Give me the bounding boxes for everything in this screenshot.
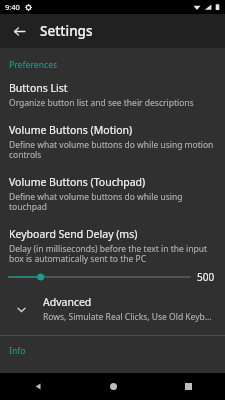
button[interactable]: Keyboard Send Delay (ms) bbox=[0, 220, 225, 288]
button[interactable]: Back bbox=[6, 18, 32, 44]
staticText: Delay (in milliseconds) before the text … bbox=[9, 243, 215, 265]
button[interactable]: Buttons List bbox=[0, 74, 225, 116]
staticText: Preferences bbox=[9, 59, 58, 71]
button[interactable]: Home bbox=[96, 373, 130, 400]
button[interactable]: Volume Buttons (Motion) bbox=[0, 116, 225, 168]
staticText: Keyboard Send Delay (ms) bbox=[9, 227, 138, 241]
button[interactable]: Back bbox=[21, 373, 55, 400]
staticText: Buttons List bbox=[9, 81, 68, 95]
staticText: Volume Buttons (Touchpad) bbox=[9, 175, 146, 189]
staticText: Define what volume buttons do while usin… bbox=[9, 139, 215, 161]
staticText: 500 bbox=[197, 270, 215, 284]
other: Expand advanced bbox=[6, 294, 36, 324]
staticText: Advanced bbox=[43, 295, 92, 309]
staticText: Organize button list and see their descr… bbox=[9, 97, 194, 109]
staticText: Rows, Simulate Real Clicks, Use Old Keyb… bbox=[43, 311, 215, 323]
button[interactable]: Expand advanced bbox=[0, 288, 225, 331]
staticText: Define what volume buttons do while usin… bbox=[9, 191, 215, 213]
staticText: 9:40 bbox=[5, 2, 20, 12]
staticText: Info bbox=[9, 345, 26, 357]
staticText: Settings bbox=[40, 22, 93, 40]
button[interactable]: Volume Buttons (Touchpad) bbox=[0, 168, 225, 220]
staticText: Volume Buttons (Motion) bbox=[9, 123, 133, 137]
button[interactable]: Recents bbox=[171, 373, 205, 400]
